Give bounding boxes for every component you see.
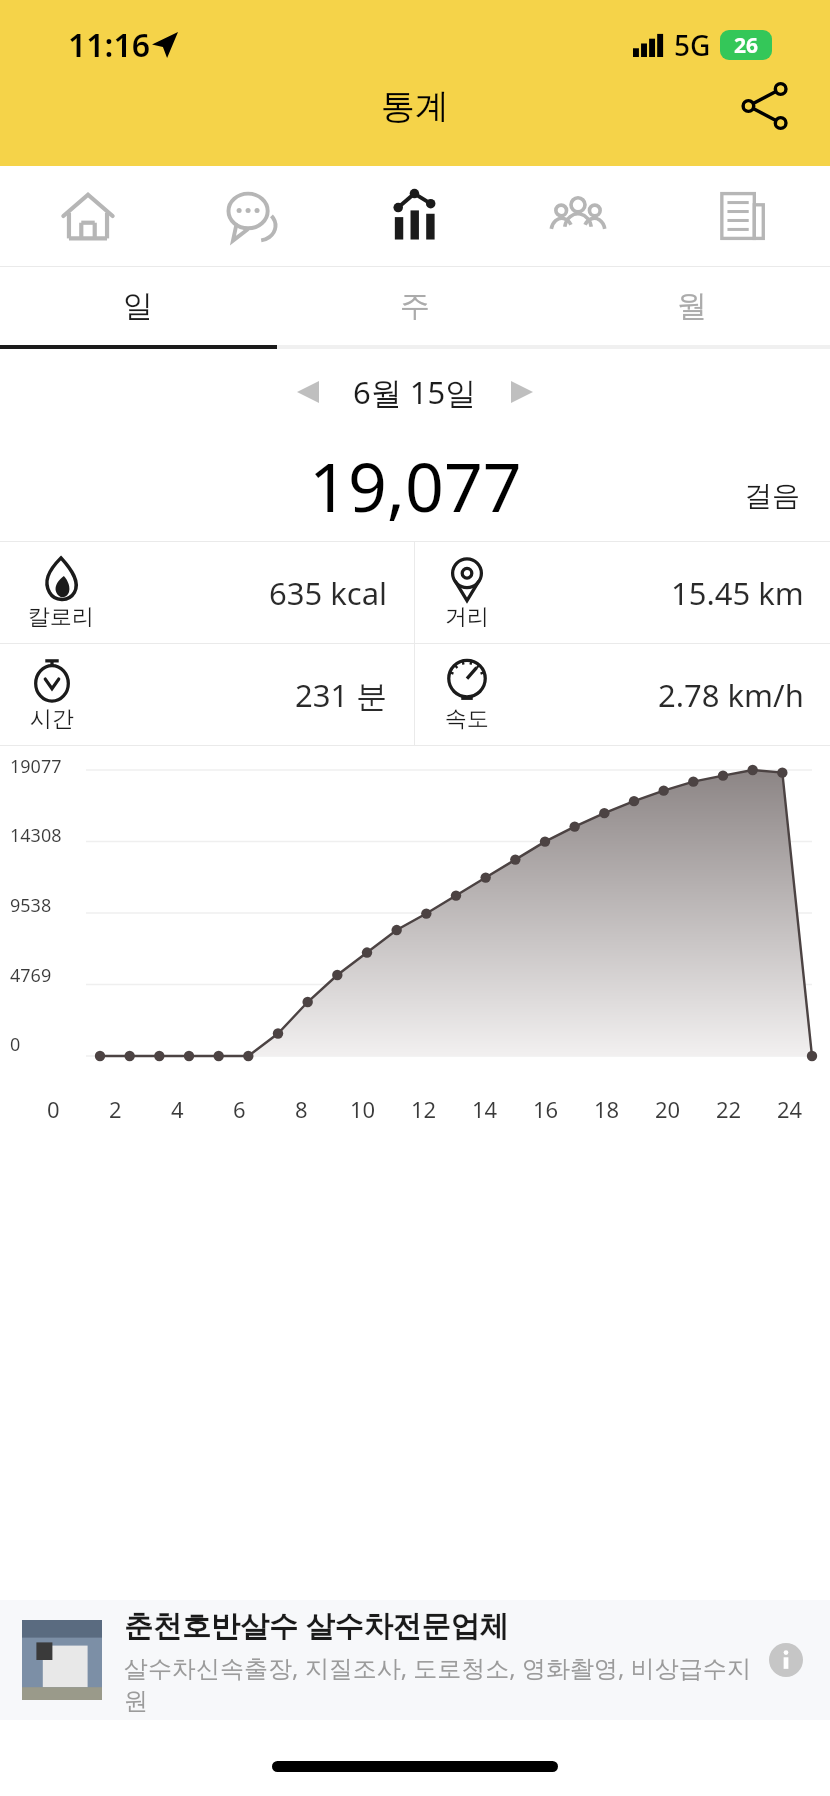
staticText: 5G bbox=[674, 26, 711, 64]
staticText: 속도 bbox=[445, 705, 489, 733]
button[interactable]: 주 bbox=[276, 267, 553, 345]
staticText: 10 bbox=[350, 1094, 376, 1124]
button[interactable]: 시간 bbox=[0, 644, 414, 745]
staticText: 14308 bbox=[10, 823, 62, 848]
staticText: 231 분 bbox=[295, 674, 388, 716]
staticText: 14 bbox=[472, 1094, 498, 1124]
staticText: 16 bbox=[533, 1094, 559, 1124]
staticText: 15.45 km bbox=[671, 572, 804, 614]
staticText: 거리 bbox=[445, 603, 489, 631]
staticText: 635 kcal bbox=[269, 572, 388, 614]
staticText: 2.78 km/h bbox=[658, 674, 804, 716]
staticText: 9538 bbox=[10, 893, 52, 918]
staticText: 월 bbox=[677, 287, 707, 325]
staticText: 19,077 bbox=[309, 439, 522, 532]
button[interactable]: Statistics bbox=[340, 166, 490, 266]
button[interactable]: Chat bbox=[177, 166, 327, 266]
button[interactable]: 거리 bbox=[415, 542, 830, 643]
staticText: 20 bbox=[655, 1094, 681, 1124]
staticText: 걸음 bbox=[744, 478, 800, 513]
button[interactable]: 칼로리 bbox=[0, 542, 414, 643]
staticText: 0 bbox=[10, 1032, 21, 1057]
staticText: 4 bbox=[171, 1094, 184, 1124]
button[interactable]: Ad info bbox=[764, 1638, 808, 1682]
staticText: 살수차신속출장, 지질조사, 도로청소, 영화촬영, 비상급수지원 bbox=[124, 1651, 754, 1716]
staticText: 통계 bbox=[381, 85, 449, 128]
staticText: 11:16 bbox=[68, 23, 151, 67]
staticText: 시간 bbox=[30, 705, 74, 733]
staticText: 0 bbox=[47, 1094, 60, 1124]
staticText: 2 bbox=[109, 1094, 122, 1124]
button[interactable]: 일 bbox=[0, 267, 276, 345]
button[interactable]: Home bbox=[13, 166, 163, 266]
button[interactable]: News bbox=[667, 166, 817, 266]
staticText: 4769 bbox=[10, 963, 52, 988]
staticText: 12 bbox=[411, 1094, 437, 1124]
button[interactable]: 속도 bbox=[415, 644, 830, 745]
button[interactable]: 월 bbox=[553, 267, 830, 345]
button[interactable]: Friends bbox=[503, 166, 653, 266]
staticText: 26 bbox=[734, 31, 759, 60]
staticText: 주 bbox=[400, 287, 430, 325]
staticText: 칼로리 bbox=[28, 603, 94, 631]
button[interactable]: Next day bbox=[491, 361, 553, 423]
staticText: 춘천호반살수 살수차전문업체 bbox=[124, 1605, 509, 1645]
staticText: 24 bbox=[777, 1094, 803, 1124]
button[interactable]: Previous day bbox=[277, 361, 339, 423]
staticText: 6 bbox=[233, 1094, 246, 1124]
staticText: 18 bbox=[594, 1094, 620, 1124]
button[interactable]: 춘천호반살수 살수차전문업체 bbox=[0, 1600, 830, 1720]
staticText: 8 bbox=[295, 1094, 308, 1124]
staticText: 6월 15일 bbox=[353, 371, 477, 413]
staticText: 일 bbox=[123, 287, 153, 325]
staticText: 19077 bbox=[10, 754, 62, 779]
staticText: 22 bbox=[716, 1094, 742, 1124]
button[interactable]: Share bbox=[730, 71, 800, 141]
